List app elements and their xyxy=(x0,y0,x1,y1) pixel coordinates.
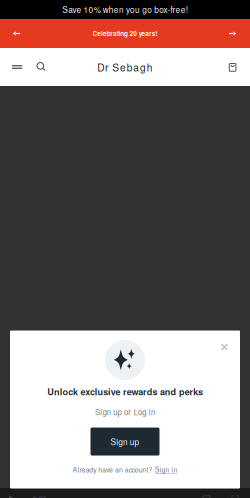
staticText: Save 10% when you go box-free! xyxy=(62,4,188,15)
button[interactable]: Subtitles xyxy=(199,493,213,498)
staticText: Sign up or Log in xyxy=(95,406,155,418)
staticText: Sign in xyxy=(155,465,177,474)
button[interactable]: Cart xyxy=(221,52,245,82)
staticText: Already have an account? xyxy=(73,465,152,474)
button[interactable]: Search xyxy=(29,51,53,81)
button[interactable]: Already have an account? xyxy=(73,465,177,474)
button[interactable]: Sign up xyxy=(90,428,159,456)
button[interactable]: Full screen xyxy=(228,493,242,498)
staticText: 0:00 xyxy=(33,493,46,498)
staticText: Celebrating 20 years! xyxy=(92,29,157,38)
staticText: Unlock exclusive rewards and perks xyxy=(47,385,203,398)
button[interactable]: Menu xyxy=(5,52,29,82)
staticText: Sign up xyxy=(110,436,140,447)
button[interactable]: Next announcement xyxy=(219,20,245,46)
button[interactable]: Close xyxy=(214,337,234,357)
button[interactable]: Previous announcement xyxy=(3,20,29,46)
button[interactable]: Play xyxy=(4,493,18,498)
staticText: Dr Sebagh xyxy=(97,60,153,74)
